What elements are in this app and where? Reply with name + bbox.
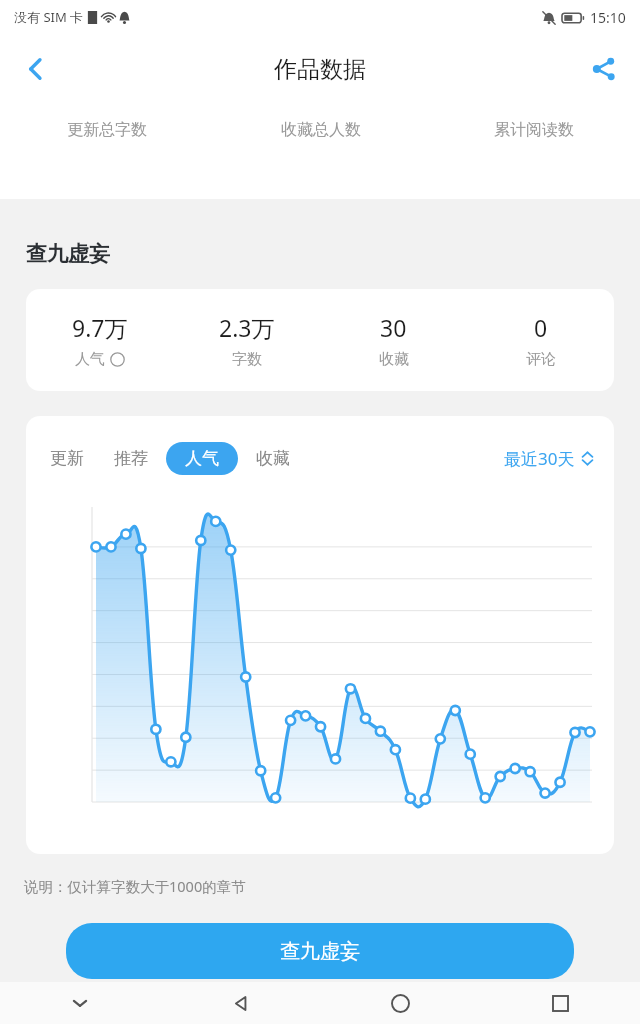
staticText: 查九虚妄 xyxy=(280,939,360,964)
staticText: 作品数据 xyxy=(274,55,366,84)
staticText: 收藏 xyxy=(256,448,290,469)
staticText: 没有 SIM 卡 xyxy=(14,8,84,26)
staticText: 30 xyxy=(380,312,407,343)
staticText: 字数 xyxy=(232,350,262,369)
staticText: 更新总字数 xyxy=(67,120,147,140)
staticText: 人气 xyxy=(185,448,219,469)
staticText: 人气 xyxy=(75,350,105,369)
staticText: 收藏总人数 xyxy=(281,120,361,140)
staticText: 累计阅读数 xyxy=(494,120,574,140)
staticText: 15:10 xyxy=(590,8,626,27)
staticText: 说明：仅计算字数大于1000的章节 xyxy=(24,876,246,896)
staticText: 最近30天 xyxy=(504,447,575,470)
button[interactable]: 9.7万 xyxy=(26,289,614,391)
staticText: 2.3万 xyxy=(219,312,275,343)
staticText: 推荐 xyxy=(114,448,148,469)
button[interactable]: Home xyxy=(320,982,480,1024)
button[interactable]: 收藏 xyxy=(252,442,294,475)
button[interactable]: 更新总字数 xyxy=(0,120,214,140)
staticText: 更新 xyxy=(50,448,84,469)
staticText: 9.7万 xyxy=(72,312,128,343)
button[interactable]: Recents xyxy=(480,982,640,1024)
button[interactable]: 收藏总人数 xyxy=(214,120,427,140)
button[interactable]: 更新 xyxy=(46,442,88,475)
staticText: 评论 xyxy=(526,350,556,369)
button[interactable]: Back xyxy=(160,982,320,1024)
button[interactable]: Share xyxy=(578,43,630,95)
button[interactable]: 人气 xyxy=(166,442,238,475)
staticText: 0 xyxy=(534,312,548,343)
button[interactable]: Back xyxy=(8,41,64,97)
button[interactable]: 推荐 xyxy=(110,442,152,475)
staticText: 查九虚妄 xyxy=(26,241,110,267)
staticText: 收藏 xyxy=(379,350,409,369)
button[interactable]: 查九虚妄 xyxy=(66,923,574,979)
button[interactable]: 累计阅读数 xyxy=(427,120,640,140)
button[interactable]: Hide xyxy=(0,982,160,1024)
button[interactable]: 最近30天 xyxy=(504,447,594,470)
